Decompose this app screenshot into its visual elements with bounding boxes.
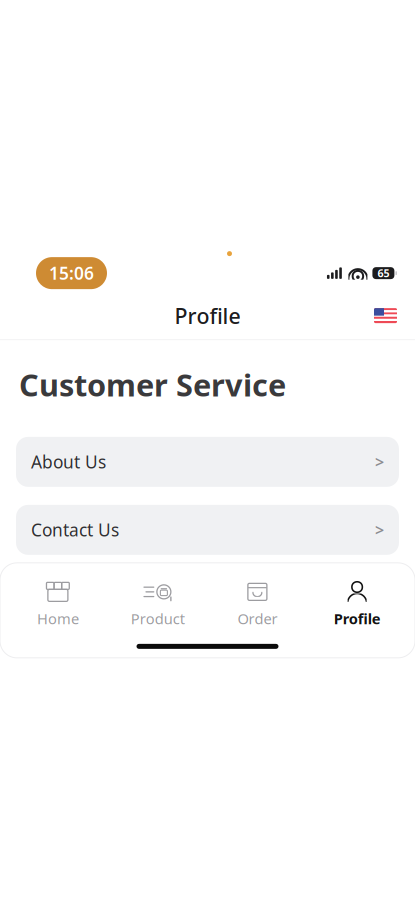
button[interactable]: Profile <box>307 577 407 632</box>
button[interactable]: Product <box>108 577 208 632</box>
staticText: 65 <box>377 266 389 280</box>
button[interactable]: About Us <box>16 437 399 487</box>
staticText: About Us <box>31 450 106 473</box>
staticText: Customer Service <box>19 364 286 405</box>
staticText: Product <box>131 609 185 628</box>
staticText: Profile <box>174 301 240 330</box>
staticText: Profile <box>334 609 381 628</box>
button[interactable]: Home <box>8 577 108 632</box>
staticText: Home <box>37 609 79 628</box>
staticText: Contact Us <box>31 518 119 541</box>
staticText: Order <box>237 609 277 628</box>
staticText: > <box>375 519 384 540</box>
button[interactable]: Contact Us <box>16 505 399 555</box>
button[interactable]: Change language <box>368 300 403 331</box>
staticText: 15:06 <box>49 262 94 285</box>
staticText: > <box>375 451 384 472</box>
button[interactable]: Order <box>207 577 307 632</box>
